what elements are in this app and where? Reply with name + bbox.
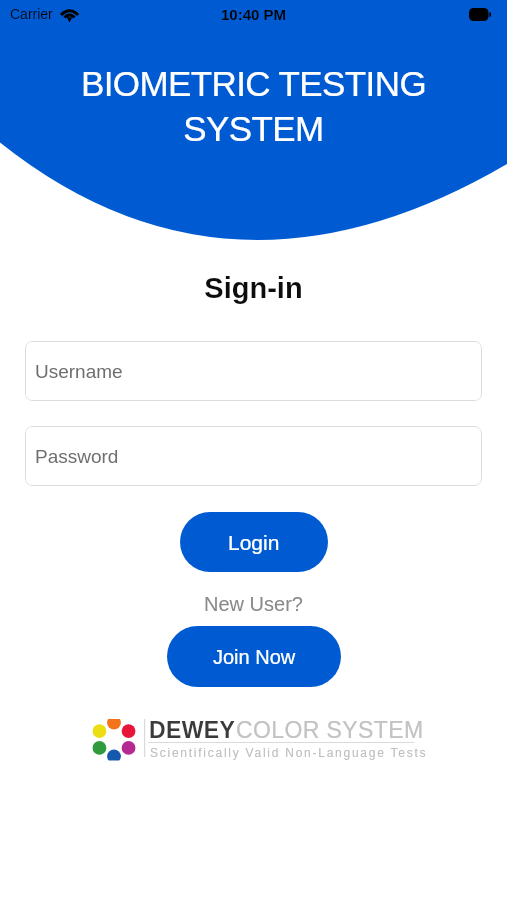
button[interactable]: Password <box>25 426 482 486</box>
button[interactable]: Join Now <box>167 626 341 687</box>
staticText: BIOMETRIC TESTING SYSTEM <box>0 64 507 148</box>
other: Battery full <box>469 8 491 21</box>
staticText: DEWEY <box>149 717 236 743</box>
staticText: 10:40 PM <box>221 6 287 23</box>
other: Wi-Fi signal <box>59 7 80 22</box>
button[interactable]: Username <box>25 341 482 401</box>
staticText: Carrier <box>10 6 53 22</box>
staticText: Username <box>35 361 123 382</box>
button[interactable]: Login <box>180 512 328 572</box>
staticText: Scientifically Valid Non-Language Tests <box>150 746 428 759</box>
staticText: Sign-in <box>0 272 507 304</box>
staticText: Password <box>35 446 119 467</box>
staticText: Join Now <box>213 646 296 668</box>
staticText: COLOR SYSTEM <box>236 717 424 743</box>
staticText: New User? <box>0 593 507 615</box>
staticText: Login <box>228 531 280 554</box>
